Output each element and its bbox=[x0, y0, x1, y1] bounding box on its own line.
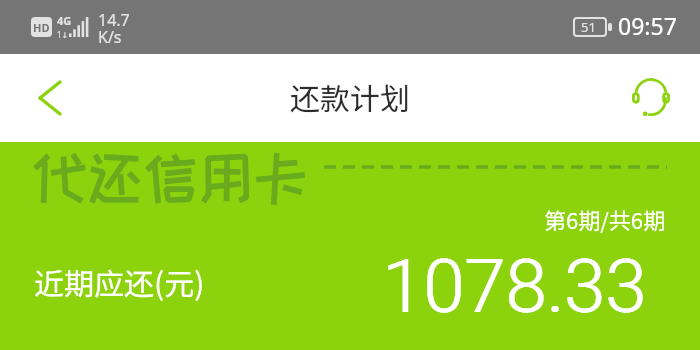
button[interactable]: Back bbox=[16, 54, 82, 142]
staticText: K/s bbox=[98, 26, 122, 48]
staticText: 1078.33 bbox=[382, 243, 646, 330]
staticText: 09:57 bbox=[618, 10, 677, 41]
staticText: HD bbox=[33, 20, 50, 35]
staticText: 代还信用卡 bbox=[32, 147, 308, 207]
staticText: 1078.33 bbox=[383, 243, 647, 330]
staticText: 第6期/共6期 bbox=[544, 203, 666, 235]
staticText: 51 bbox=[581, 18, 596, 36]
staticText: 近期应还(元) bbox=[34, 260, 205, 303]
staticText: 还款计划 bbox=[290, 75, 410, 118]
staticText: 4G bbox=[57, 13, 72, 28]
staticText: 1↓ bbox=[57, 29, 69, 40]
staticText: 14.7 bbox=[98, 9, 130, 31]
button[interactable]: Customer service bbox=[625, 54, 677, 142]
